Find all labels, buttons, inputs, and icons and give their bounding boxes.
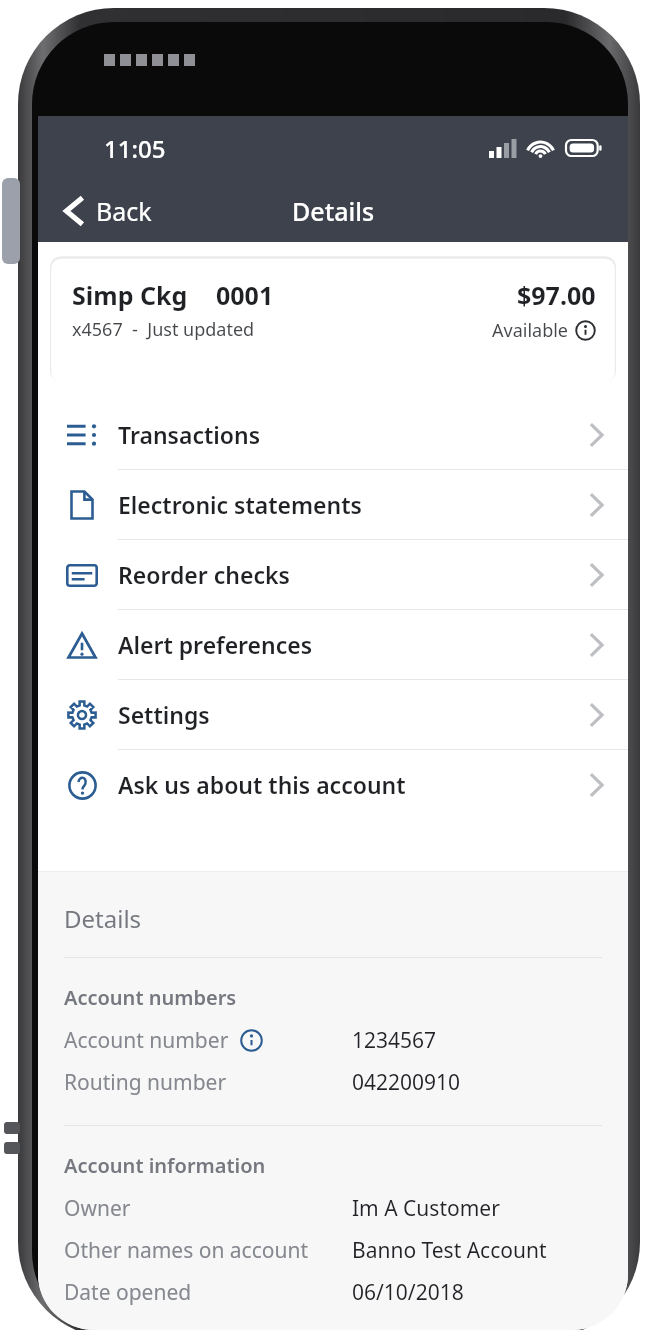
staticText: Date opened — [64, 1278, 192, 1307]
staticText: Banno Test Account — [352, 1236, 547, 1265]
staticText: 042200910 — [352, 1068, 461, 1097]
button[interactable]: Ask us about this account — [38, 750, 628, 819]
button[interactable]: Account number info — [239, 1028, 264, 1053]
staticText: Details — [292, 194, 375, 228]
staticText: Details — [64, 902, 142, 935]
staticText: Routing number — [64, 1068, 227, 1097]
staticText: Other names on account — [64, 1236, 309, 1265]
staticText: Back — [96, 194, 152, 228]
staticText: 0001 — [216, 278, 274, 312]
button[interactable]: Alert preferences — [38, 610, 628, 679]
staticText: $97.00 — [517, 278, 596, 312]
staticText: Alert preferences — [118, 629, 588, 660]
button[interactable]: Back — [38, 186, 166, 236]
staticText: Account number — [64, 1026, 229, 1055]
staticText: 06/10/2018 — [352, 1278, 464, 1307]
staticText: Ask us about this account — [118, 769, 588, 800]
staticText: Owner — [64, 1194, 131, 1223]
button[interactable]: Settings — [38, 680, 628, 749]
staticText: Account information — [64, 1152, 266, 1179]
staticText: x4567 - Just updated — [72, 317, 255, 342]
staticText: Available — [492, 318, 568, 343]
staticText: Settings — [118, 699, 588, 730]
staticText: Reorder checks — [118, 559, 588, 590]
staticText: Simp Ckg — [72, 278, 188, 312]
staticText: Electronic statements — [118, 489, 588, 520]
staticText: Transactions — [118, 419, 588, 450]
other: Available balance info — [575, 320, 596, 341]
staticText: 1234567 — [352, 1026, 437, 1055]
button[interactable]: Reorder checks — [38, 540, 628, 609]
button[interactable]: Simp Ckg — [50, 256, 616, 382]
button[interactable]: Electronic statements — [38, 470, 628, 539]
staticText: 11:05 — [104, 132, 166, 165]
staticText: Account numbers — [64, 984, 237, 1011]
staticText: Im A Customer — [352, 1194, 500, 1223]
button[interactable]: Transactions — [38, 400, 628, 469]
